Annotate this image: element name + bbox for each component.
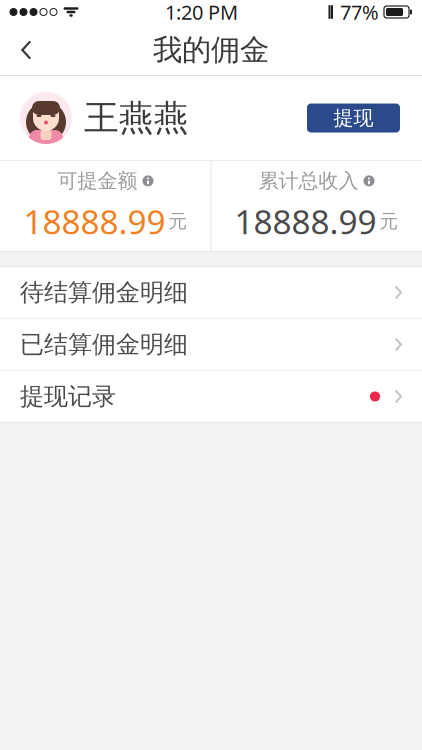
- staticText: 提现记录: [20, 382, 116, 411]
- staticText: 累计总收入: [258, 169, 358, 193]
- staticText: 1:20 PM: [165, 0, 238, 25]
- staticText: 元: [168, 210, 187, 233]
- staticText: 77%: [340, 0, 379, 25]
- staticText: 提现: [333, 106, 373, 130]
- staticText: 王燕燕: [84, 97, 189, 139]
- button[interactable]: 已结算佣金明细: [0, 319, 422, 370]
- staticText: 18888.99: [234, 199, 376, 243]
- staticText: 已结算佣金明细: [20, 330, 188, 359]
- staticText: 可提金额: [57, 169, 137, 193]
- button[interactable]: 提现: [307, 103, 400, 132]
- staticText: 元: [379, 210, 398, 233]
- staticText: 18888.99: [23, 199, 165, 243]
- button[interactable]: 返回: [0, 24, 52, 76]
- button[interactable]: 待结算佣金明细: [0, 267, 422, 318]
- staticText: 待结算佣金明细: [20, 278, 188, 307]
- button[interactable]: 提现记录: [0, 371, 422, 422]
- staticText: 我的佣金: [153, 32, 269, 68]
